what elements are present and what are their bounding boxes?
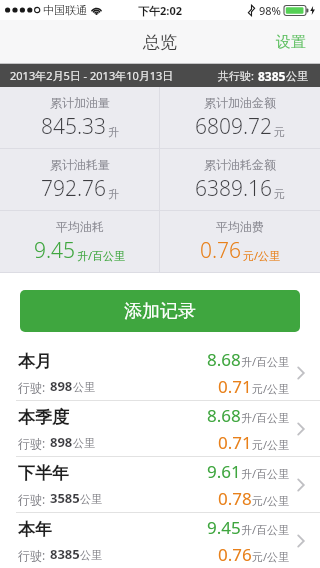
staticText: 平均油费 bbox=[216, 219, 264, 234]
staticText: 元/公里 bbox=[243, 248, 281, 263]
staticText: 98% bbox=[259, 3, 281, 18]
staticText: 9.45 bbox=[34, 236, 76, 265]
staticText: 下午2:02 bbox=[138, 3, 182, 18]
staticText: 898 bbox=[50, 433, 73, 451]
staticText: 9.61 bbox=[207, 460, 241, 483]
staticText: 元/公里 bbox=[252, 549, 290, 564]
staticText: 行驶: bbox=[18, 379, 46, 395]
staticText: 6389.16 bbox=[195, 174, 273, 203]
staticText: 9.45 bbox=[207, 516, 241, 539]
staticText: 行驶: bbox=[18, 547, 46, 563]
button[interactable]: 下半年 bbox=[0, 457, 320, 513]
button[interactable]: 设置 bbox=[262, 23, 320, 62]
staticText: 添加记录 bbox=[124, 300, 196, 323]
staticText: 累计油耗量 bbox=[50, 157, 110, 172]
staticText: 792.76 bbox=[41, 174, 107, 203]
staticText: 8.68 bbox=[207, 404, 241, 427]
staticText: 公里 bbox=[80, 492, 102, 506]
staticText: 总览 bbox=[143, 32, 177, 53]
staticText: 0.71 bbox=[218, 431, 252, 454]
staticText: 898 bbox=[50, 377, 73, 395]
staticText: 8385 bbox=[50, 545, 80, 563]
staticText: 元 bbox=[274, 125, 285, 139]
staticText: 行驶: bbox=[18, 435, 46, 451]
staticText: 本月 bbox=[18, 351, 52, 372]
staticText: 升/百公里 bbox=[241, 466, 290, 481]
staticText: 6809.72 bbox=[195, 112, 273, 141]
staticText: 8.68 bbox=[207, 348, 241, 371]
staticText: 共行驶: bbox=[218, 68, 254, 83]
button[interactable]: 本月 bbox=[0, 345, 320, 401]
staticText: 0.76 bbox=[218, 543, 252, 566]
staticText: 元/公里 bbox=[252, 437, 290, 452]
button[interactable]: 本年 bbox=[0, 513, 320, 568]
staticText: 升/百公里 bbox=[241, 522, 290, 537]
staticText: 本季度 bbox=[18, 407, 69, 428]
staticText: 升/百公里 bbox=[241, 410, 290, 425]
staticText: 升/百公里 bbox=[241, 354, 290, 369]
staticText: 升 bbox=[108, 125, 119, 139]
button[interactable]: 添加记录 bbox=[20, 290, 300, 332]
staticText: 公里 bbox=[73, 436, 95, 450]
staticText: 中国联通 bbox=[43, 3, 87, 17]
staticText: 行驶: bbox=[18, 491, 46, 507]
staticText: 公里 bbox=[80, 548, 102, 562]
staticText: 下半年 bbox=[18, 463, 69, 484]
staticText: 845.33 bbox=[41, 112, 107, 141]
staticText: 0.71 bbox=[218, 375, 252, 398]
staticText: 8385 bbox=[258, 68, 286, 84]
staticText: 元/公里 bbox=[252, 381, 290, 396]
staticText: 2013年2月5日 - 2013年10月13日 bbox=[10, 68, 174, 83]
staticText: 0.78 bbox=[218, 487, 252, 510]
staticText: 平均油耗 bbox=[56, 219, 104, 234]
staticText: 3585 bbox=[50, 489, 80, 507]
staticText: 元/公里 bbox=[252, 493, 290, 508]
other: 下半年 详情 bbox=[290, 457, 312, 512]
staticText: 升 bbox=[108, 187, 119, 201]
staticText: 累计加油量 bbox=[50, 95, 110, 110]
staticText: 累计加油金额 bbox=[204, 95, 276, 110]
staticText: 本年 bbox=[18, 519, 52, 540]
staticText: 升/百公里 bbox=[77, 248, 126, 263]
staticText: 公里 bbox=[73, 380, 95, 394]
other: 本月 详情 bbox=[290, 345, 312, 400]
other: 本季度 详情 bbox=[290, 401, 312, 456]
staticText: 设置 bbox=[276, 33, 306, 52]
other: 本年 详情 bbox=[290, 513, 312, 568]
staticText: 元 bbox=[274, 187, 285, 201]
button[interactable]: 本季度 bbox=[0, 401, 320, 457]
staticText: 0.76 bbox=[200, 236, 242, 265]
staticText: 累计油耗金额 bbox=[204, 157, 276, 172]
staticText: 公里 bbox=[286, 69, 308, 83]
